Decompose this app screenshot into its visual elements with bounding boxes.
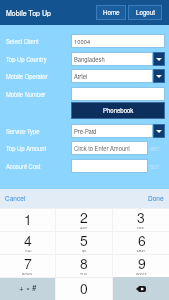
button[interactable]: 10004 [71, 34, 165, 48]
button[interactable]: 7 [0, 254, 55, 277]
button[interactable]: + ∗ # [0, 277, 55, 300]
staticText: BDT [150, 145, 160, 152]
button[interactable]: Backspace [113, 277, 169, 300]
staticText: WXYZ [136, 272, 147, 275]
staticText: 5 [80, 230, 88, 250]
staticText: 7 [24, 253, 32, 273]
staticText: Service Type [6, 127, 40, 135]
button[interactable]: Airtel [71, 69, 165, 83]
staticText: Account Cost [6, 162, 41, 170]
staticText: Click to Enter Amount [74, 144, 130, 152]
staticText: DEF [137, 226, 145, 229]
button[interactable]: 4 [0, 231, 55, 254]
button[interactable]: Bangladesh [71, 52, 165, 66]
button[interactable]: 0 [56, 277, 112, 300]
staticText: Home [103, 8, 120, 17]
button[interactable]: 3 [113, 208, 169, 231]
button[interactable]: Done [148, 194, 169, 203]
staticText: Mobile Top Up [6, 8, 51, 18]
staticText: 0 [80, 278, 88, 298]
staticText: Mobile Operator [6, 72, 48, 80]
button[interactable]: 1 [0, 208, 55, 231]
staticText: 4 [24, 230, 32, 250]
staticText: PQRS [22, 272, 33, 275]
staticText: 1 [24, 209, 32, 229]
staticText: Select Client [6, 37, 39, 45]
staticText: Mobile Number [6, 90, 46, 98]
staticText: JKL [81, 249, 88, 252]
staticText: Bangladesh [74, 55, 105, 63]
staticText: ABC [80, 226, 88, 229]
staticText: Top Up Amount [6, 144, 47, 152]
button[interactable]: 2 [56, 208, 112, 231]
button[interactable] [71, 159, 148, 173]
staticText: Airtel [74, 72, 88, 80]
staticText: 9 [138, 253, 146, 273]
staticText: MNO [137, 249, 146, 252]
button[interactable]: 5 [56, 231, 112, 254]
staticText: 10004 [74, 37, 91, 45]
button[interactable]: Click to Enter Amount [71, 141, 148, 155]
staticText: 2 [80, 207, 88, 227]
button[interactable] [71, 87, 165, 101]
button[interactable]: 8 [56, 254, 112, 277]
button[interactable]: 6 [113, 231, 169, 254]
staticText: + ∗ # [19, 282, 37, 293]
button[interactable]: Logout [128, 5, 162, 20]
staticText: Phonebook [103, 106, 134, 115]
button[interactable]: Pre-Paid [71, 124, 165, 138]
button[interactable]: Phonebook [71, 102, 165, 119]
staticText: Top Up Country [6, 55, 47, 63]
staticText: BDT [150, 163, 160, 170]
button[interactable]: Home [96, 5, 126, 20]
staticText: 8 [80, 253, 88, 273]
staticText: Pre-Paid [74, 127, 97, 135]
staticText: 6 [138, 230, 146, 250]
staticText: Logout [136, 8, 155, 17]
button[interactable]: 9 [113, 254, 169, 277]
staticText: GHI [25, 249, 32, 252]
staticText: TUV [80, 272, 88, 275]
button[interactable]: Cancel [0, 194, 26, 203]
staticText: 3 [137, 207, 145, 227]
